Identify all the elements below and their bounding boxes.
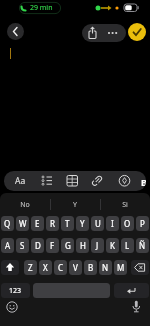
staticText: Y: [73, 200, 77, 210]
staticText: C: [58, 262, 64, 273]
staticText: Ñ: [139, 240, 146, 251]
staticText: P: [140, 218, 145, 229]
button[interactable]: Y: [50, 195, 100, 214]
button[interactable]: Ñ: [136, 238, 149, 253]
button[interactable]: T: [61, 216, 74, 231]
button[interactable]: C: [54, 260, 67, 275]
button[interactable]: W: [16, 216, 29, 231]
staticText: 29 min: [30, 3, 53, 13]
staticText: D: [35, 240, 41, 251]
button[interactable]: [1, 260, 19, 275]
staticText: I: [111, 218, 114, 229]
button[interactable]: Aa: [10, 171, 30, 191]
button[interactable]: [37, 171, 57, 191]
button[interactable]: F: [46, 238, 59, 253]
button[interactable]: A: [1, 238, 14, 253]
button[interactable]: [131, 260, 149, 275]
staticText: A: [5, 240, 11, 251]
button[interactable]: [82, 24, 126, 42]
button[interactable]: U: [91, 216, 104, 231]
button[interactable]: B: [84, 260, 97, 275]
button[interactable]: I: [106, 216, 119, 231]
button[interactable]: P: [136, 216, 149, 231]
button[interactable]: X: [39, 260, 52, 275]
button[interactable]: 29 min: [20, 2, 53, 14]
staticText: 123: [9, 286, 22, 296]
button[interactable]: V: [69, 260, 82, 275]
staticText: W: [19, 218, 27, 229]
staticText: K: [110, 240, 115, 251]
staticText: R: [50, 218, 55, 229]
button[interactable]: S: [16, 238, 29, 253]
button[interactable]: E: [31, 216, 44, 231]
button[interactable]: [114, 171, 134, 191]
staticText: Si: [122, 200, 128, 210]
button[interactable]: Z: [24, 260, 37, 275]
button[interactable]: J: [91, 238, 104, 253]
button[interactable]: [114, 283, 149, 298]
button[interactable]: Y: [76, 216, 89, 231]
button[interactable]: G: [61, 238, 74, 253]
button[interactable]: O: [121, 216, 134, 231]
button[interactable]: Q: [1, 216, 14, 231]
button[interactable]: [7, 23, 24, 40]
staticText: B: [141, 176, 146, 188]
staticText: E: [35, 218, 40, 229]
staticText: T: [65, 218, 70, 229]
button[interactable]: No: [0, 195, 50, 214]
button[interactable]: D: [31, 238, 44, 253]
button[interactable]: [33, 283, 110, 298]
staticText: M: [117, 262, 125, 273]
staticText: Z: [28, 262, 33, 273]
staticText: Aa: [15, 175, 26, 187]
staticText: Y: [80, 218, 85, 229]
button[interactable]: L: [121, 238, 134, 253]
button[interactable]: Si: [100, 195, 150, 214]
staticText: U: [95, 218, 101, 229]
button[interactable]: M: [114, 260, 127, 275]
staticText: S: [20, 240, 25, 251]
staticText: N: [102, 262, 109, 273]
button[interactable]: [62, 171, 82, 191]
button[interactable]: [5, 299, 21, 315]
button[interactable]: K: [106, 238, 119, 253]
staticText: No: [20, 200, 30, 210]
button[interactable]: H: [76, 238, 89, 253]
button[interactable]: [128, 23, 146, 41]
staticText: V: [73, 262, 78, 273]
staticText: L: [125, 240, 130, 251]
staticText: B: [88, 262, 94, 273]
staticText: X: [43, 262, 48, 273]
staticText: Q: [4, 218, 11, 229]
button[interactable]: [128, 298, 144, 316]
button[interactable]: [88, 171, 106, 191]
staticText: H: [80, 240, 86, 251]
button[interactable]: 123: [1, 283, 30, 298]
button[interactable]: R: [46, 216, 59, 231]
staticText: O: [124, 218, 131, 229]
staticText: G: [65, 240, 71, 251]
staticText: F: [50, 240, 55, 251]
staticText: J: [96, 240, 99, 251]
button[interactable]: N: [99, 260, 112, 275]
